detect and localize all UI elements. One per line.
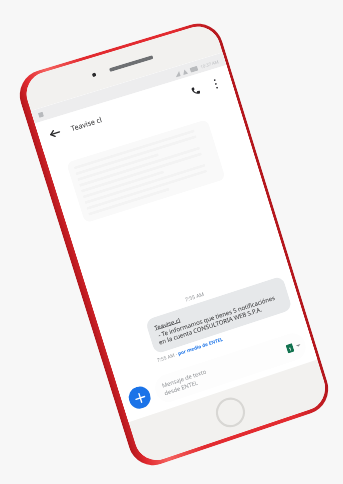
button[interactable]: Call [184,79,206,101]
staticText: Teavise.cl [153,315,181,331]
button[interactable]: Teavise.cl [145,275,293,354]
button[interactable]: Mensaje de texto [152,330,309,406]
staticText: 7:55 AM [106,265,281,328]
staticText: Teavise cl [69,114,103,133]
button[interactable]: Back [43,122,66,145]
staticText: desde ENTEL [163,378,200,397]
staticText: 7:55 AM · [156,351,179,364]
staticText: 1 [288,345,292,352]
button[interactable]: Add attachment [126,384,153,412]
staticText: por medio de ENTEL [177,336,224,357]
staticText: Mensaje de texto [161,367,207,390]
button[interactable]: More options [205,73,227,95]
staticText: - Te informamos que tienes 5 notificació… [155,291,285,347]
staticText: 10:37 AM [199,58,220,69]
